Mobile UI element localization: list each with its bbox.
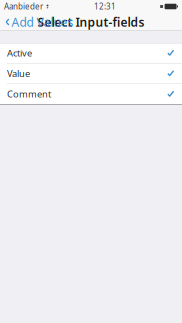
button[interactable]: Comment <box>0 84 182 104</box>
staticText: Select Input-fields <box>37 14 144 30</box>
button[interactable]: Active <box>0 43 182 63</box>
staticText: Add Values <box>11 14 73 30</box>
button[interactable]: Value <box>0 63 182 84</box>
staticText: Value <box>7 67 30 80</box>
staticText: Aanbieder <box>4 1 43 12</box>
staticText: 12:31 <box>94 1 116 12</box>
button[interactable]: Add Values <box>0 11 73 33</box>
staticText: Comment <box>7 88 51 100</box>
staticText: Active <box>7 47 32 59</box>
